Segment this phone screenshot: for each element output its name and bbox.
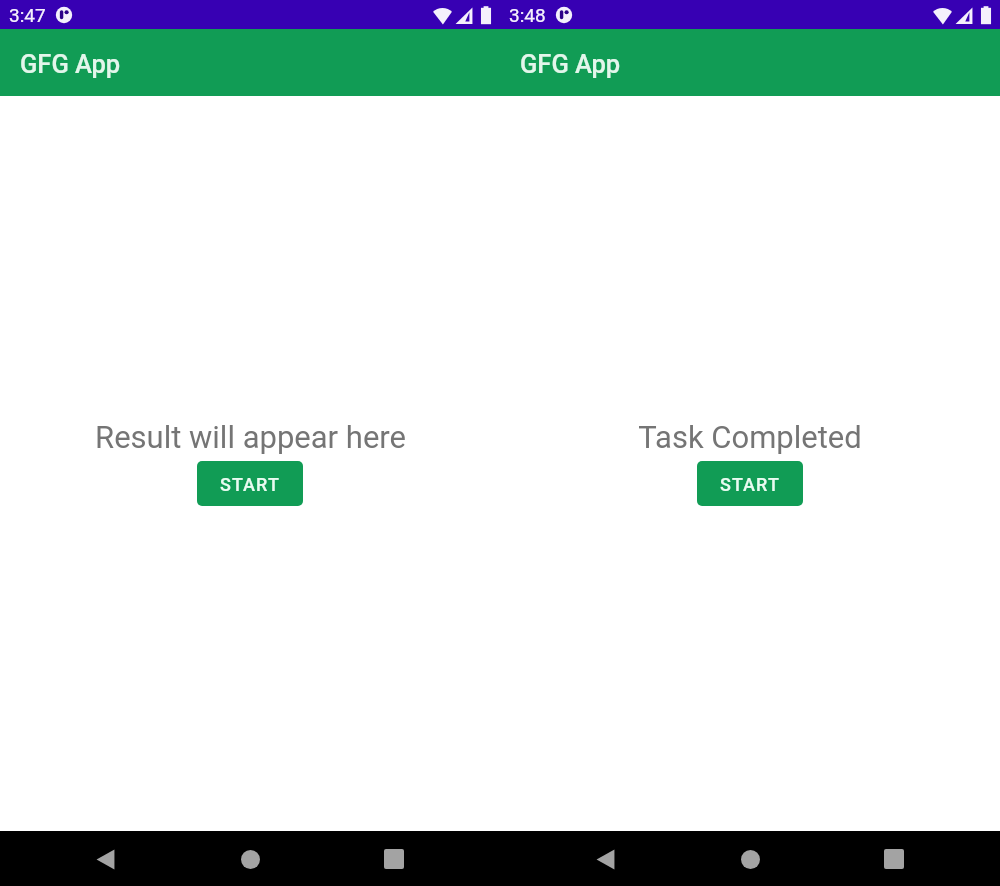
button[interactable]: Recent apps bbox=[872, 837, 916, 881]
staticText: 3:48 bbox=[509, 4, 546, 26]
staticText: START bbox=[220, 474, 280, 495]
button[interactable]: START bbox=[197, 461, 303, 506]
staticText: GFG App bbox=[520, 49, 621, 79]
button[interactable]: START bbox=[697, 461, 803, 506]
button[interactable]: Back bbox=[83, 837, 127, 881]
button[interactable]: Home bbox=[728, 837, 772, 881]
staticText: 3:47 bbox=[9, 4, 46, 26]
button[interactable]: Back bbox=[583, 837, 627, 881]
staticText: START bbox=[720, 474, 780, 495]
button[interactable]: Recent apps bbox=[372, 837, 416, 881]
button[interactable]: Home bbox=[228, 837, 272, 881]
staticText: Task Completed bbox=[638, 419, 862, 455]
staticText: GFG App bbox=[20, 49, 121, 79]
staticText: Result will appear here bbox=[95, 419, 406, 455]
